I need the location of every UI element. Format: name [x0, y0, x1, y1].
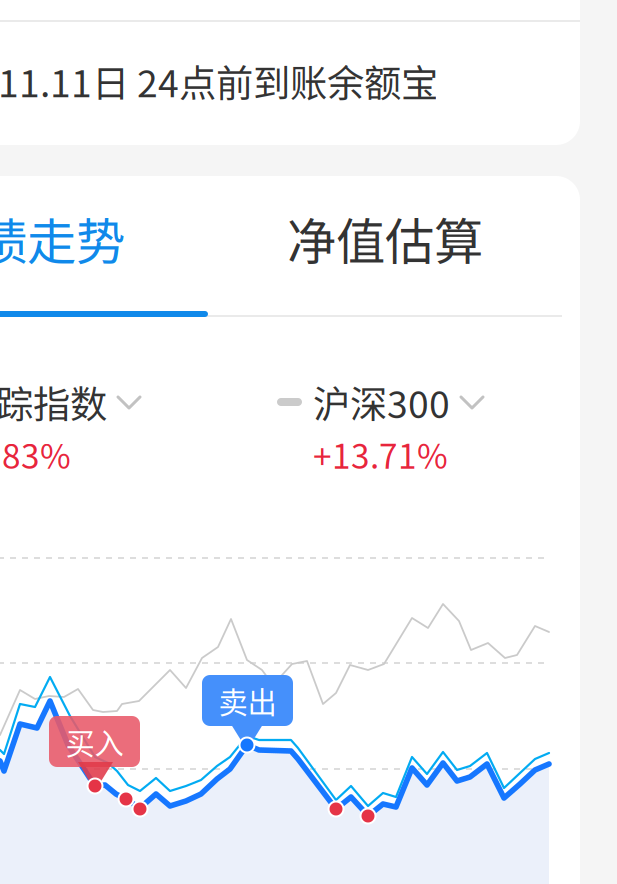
- staticText: 预计11.11日 24点前到账余额宝: [0, 54, 438, 108]
- staticText: 跟踪指数: [0, 375, 107, 429]
- staticText: 卖出: [218, 679, 276, 722]
- staticText: +13.71%: [313, 430, 448, 478]
- staticText: 业绩走势: [0, 202, 125, 274]
- staticText: 买入: [65, 720, 123, 763]
- staticText: 净值估算: [287, 202, 483, 274]
- button[interactable]: 跟踪指数: [0, 380, 140, 424]
- staticText: +12.83%: [0, 430, 71, 478]
- staticText: 沪深300: [313, 375, 450, 429]
- button[interactable]: 买入: [49, 716, 140, 767]
- button[interactable]: 卖出: [202, 675, 293, 726]
- button[interactable]: 业绩走势: [0, 188, 203, 288]
- button[interactable]: 沪深300: [277, 380, 483, 424]
- button[interactable]: 净值估算: [209, 188, 561, 288]
